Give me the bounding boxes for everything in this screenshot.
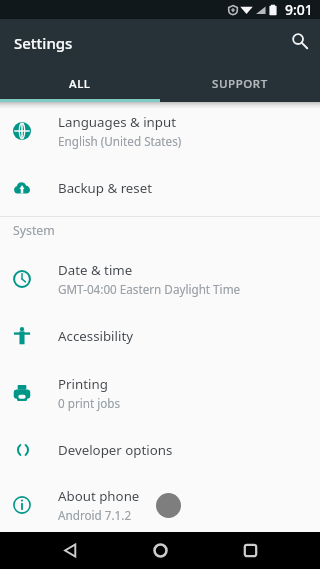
button[interactable]: Accessibility — [0, 307, 320, 364]
staticText: 0 print jobs — [58, 395, 121, 411]
staticText: English (United States) — [58, 133, 182, 149]
button[interactable]: Printing — [0, 364, 320, 421]
button[interactable]: Recent apps — [226, 532, 274, 568]
staticText: Date & time — [58, 261, 133, 279]
staticText: ALL — [69, 76, 91, 92]
button[interactable]: Backup & reset — [0, 159, 320, 216]
button[interactable]: SUPPORT — [160, 66, 320, 102]
button[interactable]: ALL — [0, 66, 160, 102]
staticText: SUPPORT — [212, 76, 268, 92]
staticText: Accessibility — [58, 327, 133, 345]
staticText: System — [13, 222, 55, 239]
button[interactable]: Search — [282, 23, 318, 59]
staticText: Android 7.1.2 — [58, 507, 132, 523]
button[interactable]: About phone — [0, 478, 320, 532]
button[interactable]: Languages & input — [0, 102, 320, 159]
staticText: Languages & input — [58, 113, 177, 131]
staticText: Backup & reset — [58, 179, 153, 197]
staticText: About phone — [58, 487, 140, 505]
button[interactable]: Date & time — [0, 250, 320, 307]
staticText: GMT-04:00 Eastern Daylight Time — [58, 281, 241, 297]
button[interactable]: Developer options — [0, 421, 320, 478]
staticText: Settings — [14, 33, 73, 53]
staticText: 9:01 — [285, 0, 313, 19]
staticText: Developer options — [58, 441, 173, 459]
button[interactable]: Back — [46, 532, 94, 568]
staticText: Printing — [58, 375, 108, 393]
button[interactable]: Home — [136, 532, 184, 568]
